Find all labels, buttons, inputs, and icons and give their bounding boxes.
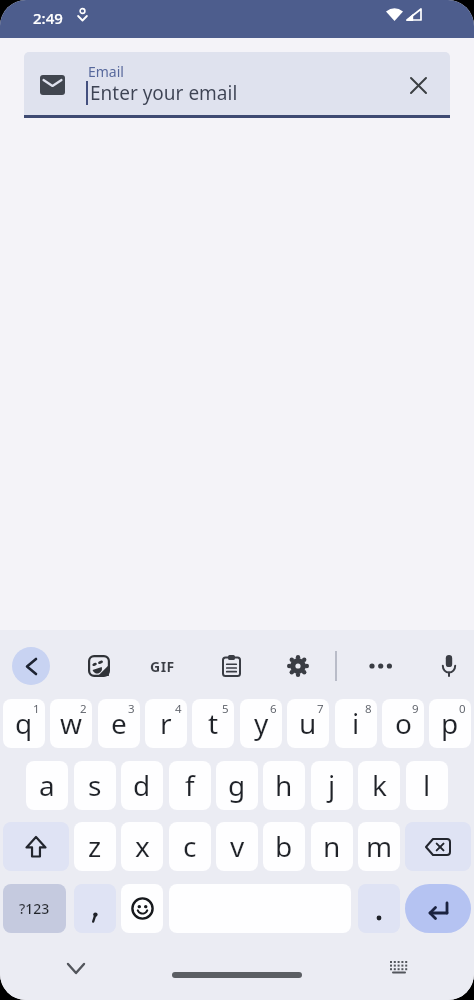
- staticText: 8: [365, 701, 372, 717]
- staticText: 7: [317, 701, 324, 717]
- button[interactable]: [12, 647, 50, 685]
- button[interactable]: m: [358, 822, 400, 871]
- button[interactable]: [3, 822, 69, 871]
- button[interactable]: c: [169, 822, 211, 871]
- staticText: q: [15, 704, 33, 742]
- button[interactable]: [405, 884, 471, 933]
- staticText: c: [183, 827, 197, 865]
- button[interactable]: q: [3, 699, 45, 748]
- button[interactable]: d: [121, 761, 163, 810]
- button[interactable]: Email: [24, 52, 450, 118]
- button[interactable]: b: [263, 822, 305, 871]
- staticText: 0: [459, 701, 466, 717]
- staticText: j: [328, 766, 336, 804]
- staticText: 9: [412, 701, 419, 717]
- staticText: r: [160, 704, 172, 742]
- staticText: o: [395, 704, 412, 742]
- staticText: a: [39, 766, 55, 804]
- button[interactable]: [279, 647, 317, 685]
- button[interactable]: y: [240, 699, 282, 748]
- button[interactable]: [405, 822, 471, 871]
- button[interactable]: f: [169, 761, 211, 810]
- button[interactable]: e: [98, 699, 140, 748]
- button[interactable]: [80, 647, 118, 685]
- button[interactable]: n: [311, 822, 353, 871]
- button[interactable]: l: [406, 761, 448, 810]
- button[interactable]: [404, 71, 432, 99]
- button[interactable]: GIF: [143, 647, 181, 685]
- button[interactable]: p: [429, 699, 471, 748]
- staticText: 2: [80, 701, 87, 717]
- button[interactable]: k: [358, 761, 400, 810]
- staticText: GIF: [150, 657, 175, 676]
- button[interactable]: u: [287, 699, 329, 748]
- staticText: 1: [33, 701, 40, 717]
- staticText: n: [323, 827, 341, 865]
- button[interactable]: [212, 647, 250, 685]
- button[interactable]: z: [74, 822, 116, 871]
- button[interactable]: v: [216, 822, 258, 871]
- button[interactable]: g: [216, 761, 258, 810]
- staticText: m: [366, 827, 393, 865]
- button[interactable]: ?123: [3, 884, 66, 933]
- button[interactable]: x: [121, 822, 163, 871]
- staticText: 2:49: [33, 8, 63, 28]
- staticText: ?123: [19, 899, 50, 918]
- button[interactable]: [74, 884, 116, 933]
- staticText: 6: [270, 701, 277, 717]
- staticText: g: [228, 766, 246, 804]
- staticText: 4: [175, 701, 182, 717]
- button[interactable]: t: [192, 699, 234, 748]
- staticText: 5: [222, 701, 229, 717]
- staticText: e: [111, 704, 127, 742]
- button[interactable]: [121, 884, 163, 933]
- staticText: k: [372, 766, 387, 804]
- button[interactable]: [358, 884, 400, 933]
- staticText: x: [135, 827, 150, 865]
- button[interactable]: i: [335, 699, 377, 748]
- staticText: i: [352, 704, 360, 742]
- button[interactable]: w: [50, 699, 92, 748]
- staticText: h: [275, 766, 293, 804]
- button[interactable]: o: [382, 699, 424, 748]
- staticText: w: [60, 704, 83, 742]
- staticText: y: [254, 704, 269, 742]
- staticText: l: [423, 766, 431, 804]
- button[interactable]: j: [311, 761, 353, 810]
- staticText: d: [133, 766, 151, 804]
- staticText: z: [88, 827, 102, 865]
- button[interactable]: [172, 972, 302, 978]
- staticText: u: [299, 704, 317, 742]
- staticText: 3: [128, 701, 135, 717]
- staticText: b: [275, 827, 293, 865]
- button[interactable]: r: [145, 699, 187, 748]
- staticText: s: [88, 766, 102, 804]
- button[interactable]: a: [26, 761, 68, 810]
- button[interactable]: s: [74, 761, 116, 810]
- button[interactable]: [430, 647, 468, 685]
- staticText: Email: [88, 62, 124, 81]
- staticText: f: [185, 766, 195, 804]
- staticText: v: [230, 827, 245, 865]
- staticText: t: [208, 704, 219, 742]
- staticText: Enter your email: [90, 80, 238, 106]
- button[interactable]: [362, 647, 400, 685]
- button[interactable]: h: [263, 761, 305, 810]
- staticText: p: [441, 704, 459, 742]
